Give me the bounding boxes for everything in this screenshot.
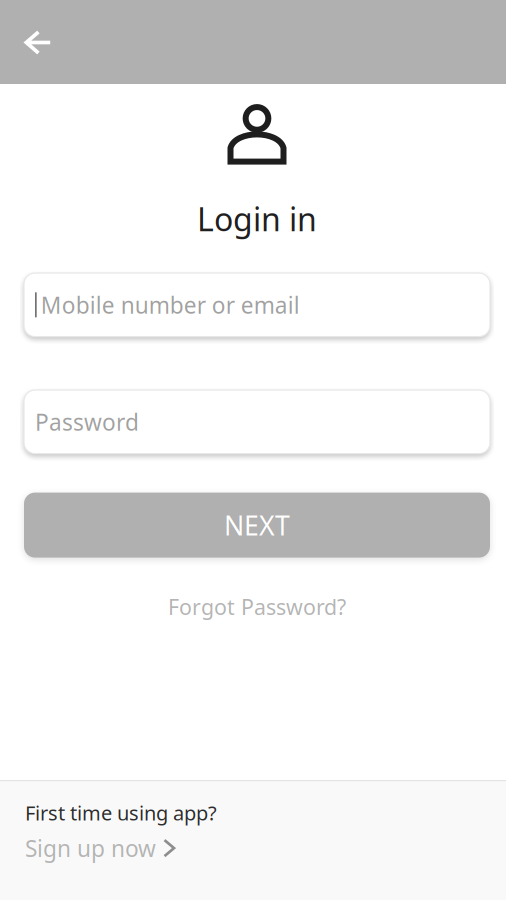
staticText: Login in	[197, 198, 317, 240]
button[interactable]: Forgot Password?	[168, 585, 346, 629]
button[interactable]: Back	[0, 0, 76, 84]
staticText: Mobile number or email	[41, 290, 300, 320]
staticText: Password	[35, 407, 139, 437]
staticText: First time using app?	[25, 799, 217, 826]
staticText: Forgot Password?	[168, 593, 346, 621]
button[interactable]: Password	[24, 390, 490, 454]
staticText: Sign up now	[25, 833, 156, 863]
button[interactable]: NEXT	[24, 493, 490, 558]
staticText: NEXT	[224, 507, 290, 543]
button[interactable]: Sign up now	[25, 826, 175, 872]
button[interactable]: Mobile number or email	[24, 273, 490, 337]
